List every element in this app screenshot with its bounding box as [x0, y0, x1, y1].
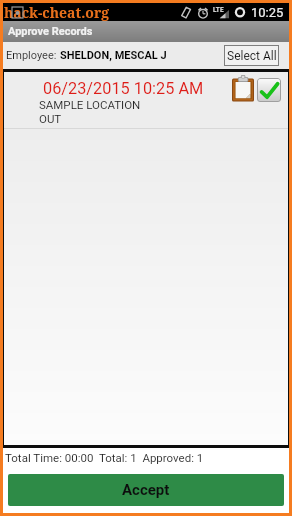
staticText: Total Time: 00:00 Total: 1 Approved: 1 [5, 451, 204, 464]
staticText: Accept [122, 481, 170, 499]
button[interactable]: 06/23/2015 10:25 AM [4, 72, 288, 129]
staticText: SAMPLE LOCATION [39, 98, 141, 111]
staticText: 10:25 [251, 5, 284, 20]
staticText: Employee: [6, 49, 60, 62]
button[interactable]: Accept [8, 474, 284, 506]
staticText: SHELDON, MESCAL J [60, 49, 167, 62]
button[interactable]: Approved [257, 78, 281, 102]
staticText: 06/23/2015 10:25 AM [43, 79, 204, 98]
button[interactable]: Notes [232, 75, 254, 101]
staticText: OUT [39, 112, 62, 125]
staticText: hack-cheat.org [4, 3, 110, 21]
staticText: Approve Records [8, 25, 93, 38]
button[interactable]: Select All [224, 45, 279, 66]
staticText: LTE [213, 6, 224, 14]
staticText: Select All [227, 49, 277, 63]
